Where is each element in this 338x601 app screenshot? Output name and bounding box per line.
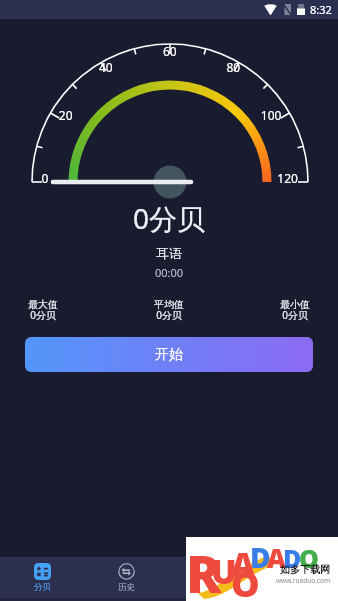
staticText: 耳语 xyxy=(156,245,182,261)
staticText: 开始 xyxy=(155,346,183,364)
staticText: U xyxy=(211,548,237,594)
staticText: A xyxy=(267,540,286,575)
staticText: A xyxy=(231,542,255,587)
staticText: D xyxy=(283,541,302,575)
staticText: D xyxy=(250,538,271,576)
staticText: 8:32 xyxy=(310,2,332,17)
staticText: 平均值 0分贝 xyxy=(154,298,184,322)
staticText: 如多下载网 xyxy=(280,563,330,576)
staticText: 最小值 0分贝 xyxy=(280,298,310,322)
staticText: 最大值 0分贝 xyxy=(28,298,58,322)
staticText: 0分贝 xyxy=(133,199,206,237)
staticText: R xyxy=(186,537,222,601)
staticText: www.ruaduo.com xyxy=(276,576,330,585)
button[interactable]: 分贝 xyxy=(0,557,84,598)
staticText: 00:00 xyxy=(155,265,184,280)
staticText: 分贝 xyxy=(34,582,51,593)
staticText: O xyxy=(231,559,260,601)
button[interactable]: 开始 xyxy=(25,337,313,372)
staticText: O xyxy=(299,541,319,575)
button[interactable]: 历史 xyxy=(84,557,168,598)
staticText: 历史 xyxy=(118,582,135,593)
